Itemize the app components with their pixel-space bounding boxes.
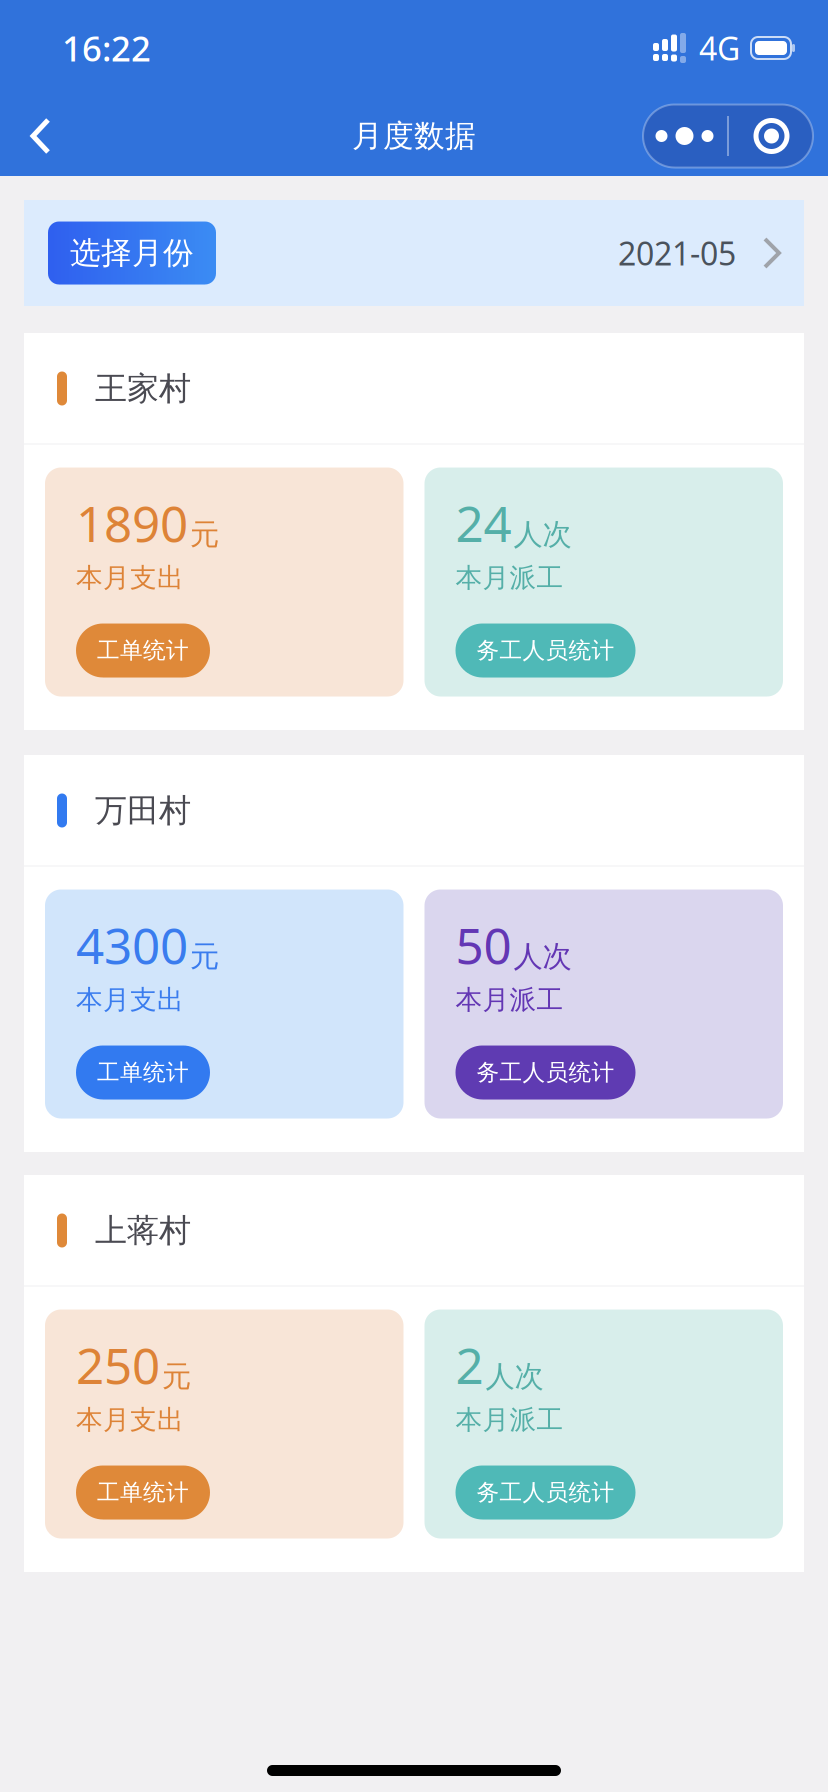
staticText: 2021-05 bbox=[618, 232, 736, 274]
button[interactable]: 工单统计 bbox=[76, 1045, 210, 1099]
staticText: 工单统计 bbox=[97, 1059, 189, 1086]
staticText: 本月派工 bbox=[455, 1403, 563, 1436]
button[interactable]: 2021-05 bbox=[618, 232, 782, 274]
staticText: 本月支出 bbox=[76, 983, 184, 1016]
staticText: 务工人员统计 bbox=[476, 1059, 614, 1086]
button[interactable]: More bbox=[642, 104, 727, 167]
staticText: 人次 bbox=[513, 938, 571, 974]
staticText: 上蒋村 bbox=[95, 1211, 191, 1250]
button[interactable]: 务工人员统计 bbox=[455, 623, 635, 677]
staticText: 务工人员统计 bbox=[476, 1479, 614, 1506]
staticText: 人次 bbox=[485, 1358, 543, 1394]
staticText: 50 bbox=[455, 912, 511, 977]
staticText: 本月派工 bbox=[455, 561, 563, 594]
staticText: 务工人员统计 bbox=[476, 637, 614, 664]
staticText: 月度数据 bbox=[352, 117, 476, 155]
staticText: 本月支出 bbox=[76, 561, 184, 594]
staticText: 工单统计 bbox=[97, 637, 189, 664]
button[interactable]: 工单统计 bbox=[76, 623, 210, 677]
staticText: 本月派工 bbox=[455, 983, 563, 1016]
staticText: 元 bbox=[162, 1358, 191, 1394]
staticText: 元 bbox=[190, 516, 219, 552]
staticText: 4300 bbox=[76, 912, 188, 977]
staticText: 选择月份 bbox=[70, 234, 194, 272]
staticText: 1890 bbox=[76, 490, 188, 555]
staticText: 王家村 bbox=[95, 369, 191, 408]
button[interactable]: 务工人员统计 bbox=[455, 1045, 635, 1099]
button[interactable]: 选择月份 bbox=[48, 221, 216, 284]
staticText: 万田村 bbox=[95, 791, 191, 830]
staticText: 250 bbox=[76, 1332, 160, 1397]
staticText: 16:22 bbox=[62, 25, 151, 71]
button[interactable]: Back bbox=[2, 96, 80, 176]
staticText: 24 bbox=[455, 490, 511, 555]
button[interactable]: 务工人员统计 bbox=[455, 1465, 635, 1519]
staticText: 4G bbox=[699, 27, 740, 69]
staticText: 工单统计 bbox=[97, 1479, 189, 1506]
staticText: 2 bbox=[455, 1332, 483, 1397]
button[interactable]: Close bbox=[729, 104, 814, 167]
button[interactable]: 工单统计 bbox=[76, 1465, 210, 1519]
staticText: 本月支出 bbox=[76, 1403, 184, 1436]
staticText: 人次 bbox=[513, 516, 571, 552]
staticText: 元 bbox=[190, 938, 219, 974]
